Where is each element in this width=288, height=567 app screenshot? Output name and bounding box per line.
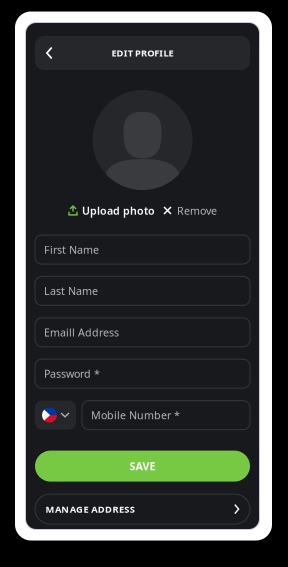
staticText: Last Name [44,284,98,298]
staticText: MANAGE ADDRESS [45,503,135,515]
staticText: EDIT PROFILE [111,47,174,59]
button[interactable]: Remove [164,203,217,218]
staticText: Mobile Number * [91,408,180,422]
staticText: Password * [44,367,100,381]
button[interactable]: Country code [35,401,76,430]
staticText: SAVE [129,459,155,473]
staticText: Upload photo [82,203,155,218]
button[interactable]: SAVE [35,451,250,482]
button[interactable]: MANAGE ADDRESS [35,494,250,524]
staticText: Remove [177,203,217,218]
staticText: First Name [44,242,99,257]
button[interactable]: Upload photo [68,203,155,218]
staticText: Emaill Address [44,325,119,339]
button[interactable]: EDIT PROFILE [35,36,250,70]
